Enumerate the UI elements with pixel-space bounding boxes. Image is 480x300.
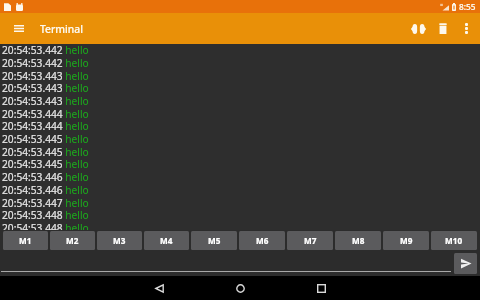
button[interactable]: Recent apps: [308, 276, 334, 300]
staticText: M5: [208, 235, 221, 246]
staticText: 20:54:53.446 hello: [2, 170, 89, 184]
staticText: 20:54:53.445 hello: [2, 132, 89, 146]
staticText: 20:54:53.445 hello: [2, 145, 89, 159]
button[interactable]: [0, 250, 454, 276]
staticText: 20:54:53.442 hello: [2, 56, 89, 70]
staticText: M9: [400, 235, 413, 246]
staticText: 20:54:53.443 hello: [2, 94, 89, 108]
button[interactable]: Clear: [431, 13, 455, 44]
staticText: 20:54:53.444 hello: [2, 119, 89, 133]
staticText: 20:54:53.443 hello: [2, 69, 89, 83]
button[interactable]: M6: [239, 231, 285, 250]
button[interactable]: M2: [50, 231, 95, 250]
staticText: 20:54:53.443 hello: [2, 81, 89, 95]
staticText: 20:54:53.442 hello: [2, 44, 89, 57]
button[interactable]: M1: [3, 231, 48, 250]
button[interactable]: M7: [287, 231, 333, 250]
staticText: 20:54:53.446 hello: [2, 183, 89, 197]
button[interactable]: Connect device: [405, 13, 431, 44]
staticText: M3: [113, 235, 126, 246]
staticText: 8:55: [459, 1, 476, 12]
button[interactable]: Send: [454, 253, 477, 274]
staticText: M8: [352, 235, 365, 246]
staticText: 20:54:53.448 hello: [2, 221, 89, 230]
staticText: M2: [66, 235, 79, 246]
staticText: M10: [445, 235, 463, 246]
staticText: 20:54:53.445 hello: [2, 157, 89, 171]
button[interactable]: M8: [335, 231, 381, 250]
staticText: Terminal: [40, 22, 83, 36]
button[interactable]: M3: [97, 231, 142, 250]
staticText: 20:54:53.444 hello: [2, 107, 89, 121]
button[interactable]: 20:54:53.442 hello: [0, 44, 480, 230]
staticText: M4: [160, 235, 173, 246]
staticText: 20:54:53.447 hello: [2, 196, 89, 210]
staticText: M6: [256, 235, 269, 246]
button[interactable]: M10: [431, 231, 477, 250]
button[interactable]: M4: [144, 231, 189, 250]
button[interactable]: Back: [146, 276, 172, 300]
staticText: 20:54:53.448 hello: [2, 208, 89, 222]
staticText: M7: [304, 235, 317, 246]
button[interactable]: More options: [455, 13, 477, 44]
button[interactable]: M9: [383, 231, 429, 250]
button[interactable]: Open navigation drawer: [0, 13, 38, 44]
button[interactable]: Home: [227, 276, 253, 300]
button[interactable]: M5: [191, 231, 237, 250]
staticText: M1: [19, 235, 32, 246]
